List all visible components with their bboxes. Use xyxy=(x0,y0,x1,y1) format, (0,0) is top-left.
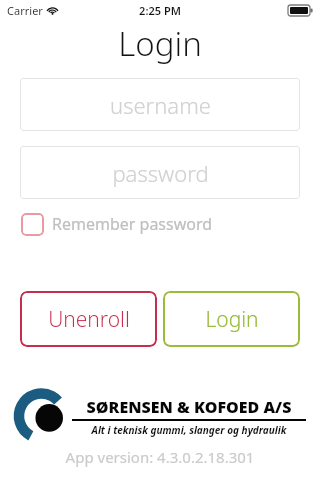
staticText: App version: 4.3.0.2.18.301 xyxy=(0,447,320,467)
staticText: Login xyxy=(118,21,202,66)
button[interactable]: Login xyxy=(163,291,300,347)
staticText: SØRENSEN & KOFOED A/S xyxy=(72,396,306,418)
button[interactable]: username xyxy=(20,78,300,131)
staticText: username xyxy=(110,90,211,120)
staticText: password xyxy=(112,158,209,188)
staticText: Carrier xyxy=(7,3,43,18)
button[interactable]: Remember password xyxy=(21,211,213,237)
staticText: Remember password xyxy=(52,213,213,235)
staticText: Alt i teknisk gummi, slanger og hydrauli… xyxy=(72,423,306,437)
staticText: Unenroll xyxy=(48,305,130,334)
staticText: Login xyxy=(205,305,259,334)
staticText: 2:25 PM xyxy=(139,3,181,18)
button[interactable]: password xyxy=(20,146,300,199)
button[interactable]: Unenroll xyxy=(20,291,157,347)
